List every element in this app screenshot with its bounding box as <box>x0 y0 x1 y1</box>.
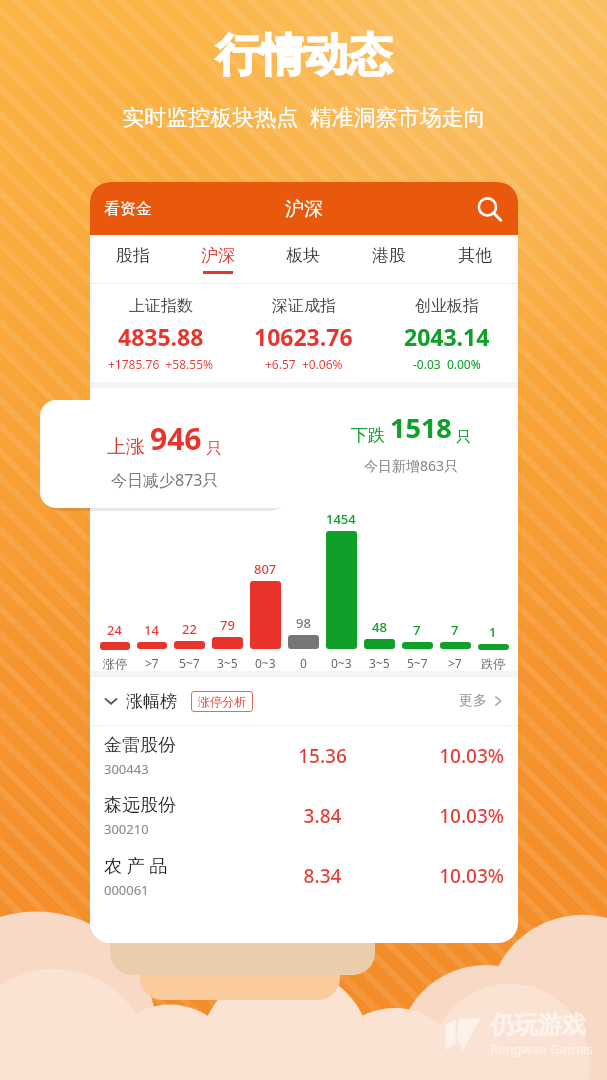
staticText: 0~3 <box>255 655 276 671</box>
staticText: 港股 <box>372 245 406 266</box>
staticText: 创业板指 <box>415 296 479 316</box>
staticText: 3~5 <box>369 655 390 671</box>
staticText: 金雷股份 <box>104 734 176 757</box>
staticText: Rengwan Games <box>490 1040 593 1058</box>
staticText: 807 <box>254 560 277 578</box>
staticText: 10.03% <box>383 743 504 769</box>
button[interactable]: 沪深 <box>175 235 260 283</box>
button[interactable]: 金雷股份 <box>104 726 504 786</box>
button[interactable]: 港股 <box>346 235 432 283</box>
staticText: 沪深 <box>201 245 235 266</box>
staticText: 实时监控板块热点 精准洞察市场走向 <box>122 101 486 131</box>
staticText: -0.03 0.00% <box>413 356 481 372</box>
staticText: 946 <box>150 418 202 459</box>
staticText: 股指 <box>116 245 150 266</box>
staticText: 深证成指 <box>272 296 336 316</box>
staticText: 300210 <box>104 820 149 838</box>
button[interactable]: 涨幅榜 <box>104 677 504 725</box>
staticText: 4835.88 <box>118 321 204 352</box>
staticText: 只 <box>202 437 223 459</box>
staticText: 农 产 品 <box>104 853 168 878</box>
staticText: 跌停 <box>481 656 505 671</box>
staticText: 只 <box>452 426 471 446</box>
staticText: 10623.76 <box>254 321 353 352</box>
button[interactable]: 股指 <box>90 235 175 283</box>
button[interactable]: 农 产 品 <box>104 846 504 906</box>
staticText: 7 <box>451 621 459 639</box>
button[interactable]: Search <box>472 192 506 226</box>
staticText: 今日新增863只 <box>364 456 459 475</box>
staticText: 上涨 <box>107 433 150 459</box>
staticText: 更多 <box>459 692 487 710</box>
staticText: 涨停分析 <box>198 694 246 709</box>
staticText: +1785.76 +58.55% <box>108 356 214 372</box>
staticText: 5~7 <box>407 655 428 671</box>
staticText: 涨停 <box>103 656 127 671</box>
staticText: 000061 <box>104 881 149 899</box>
staticText: 其他 <box>458 245 492 266</box>
staticText: 48 <box>372 618 387 636</box>
staticText: 10.03% <box>383 803 504 829</box>
staticText: 1454 <box>326 510 356 528</box>
staticText: 8.34 <box>262 863 383 889</box>
staticText: 98 <box>296 614 311 632</box>
staticText: 79 <box>220 616 235 634</box>
button[interactable]: 上涨 <box>40 400 290 508</box>
staticText: >7 <box>448 655 462 671</box>
staticText: +6.57 +0.06% <box>265 356 343 372</box>
staticText: 0 <box>300 655 307 671</box>
staticText: 3.84 <box>262 803 383 829</box>
button[interactable]: 其他 <box>432 235 518 283</box>
staticText: 7 <box>413 621 421 639</box>
staticText: 涨幅榜 <box>126 691 177 712</box>
staticText: 10.03% <box>383 863 504 889</box>
staticText: 上证指数 <box>129 296 193 316</box>
staticText: 1518 <box>390 409 452 446</box>
staticText: 3~5 <box>217 655 238 671</box>
staticText: >7 <box>145 655 159 671</box>
staticText: 15.36 <box>262 743 383 769</box>
staticText: 森远股份 <box>104 794 176 817</box>
staticText: 下跌 <box>351 423 390 446</box>
button[interactable]: 看资金 <box>104 199 152 219</box>
staticText: 22 <box>182 620 197 638</box>
staticText: 今日减少873只 <box>111 469 219 491</box>
staticText: 300443 <box>104 760 149 778</box>
button[interactable]: 森远股份 <box>104 786 504 846</box>
staticText: 行情动态 <box>216 28 392 83</box>
staticText: 0~3 <box>331 655 352 671</box>
button[interactable]: 涨停分析 <box>198 694 246 709</box>
staticText: 板块 <box>286 245 320 266</box>
staticText: 24 <box>107 621 122 639</box>
staticText: 5~7 <box>179 655 200 671</box>
staticText: 沪深 <box>285 197 323 221</box>
staticText: 2043.14 <box>404 321 490 352</box>
staticText: 仍玩游戏 <box>490 1010 586 1040</box>
staticText: 1 <box>489 623 497 641</box>
button[interactable]: 板块 <box>260 235 346 283</box>
staticText: 14 <box>144 621 159 639</box>
